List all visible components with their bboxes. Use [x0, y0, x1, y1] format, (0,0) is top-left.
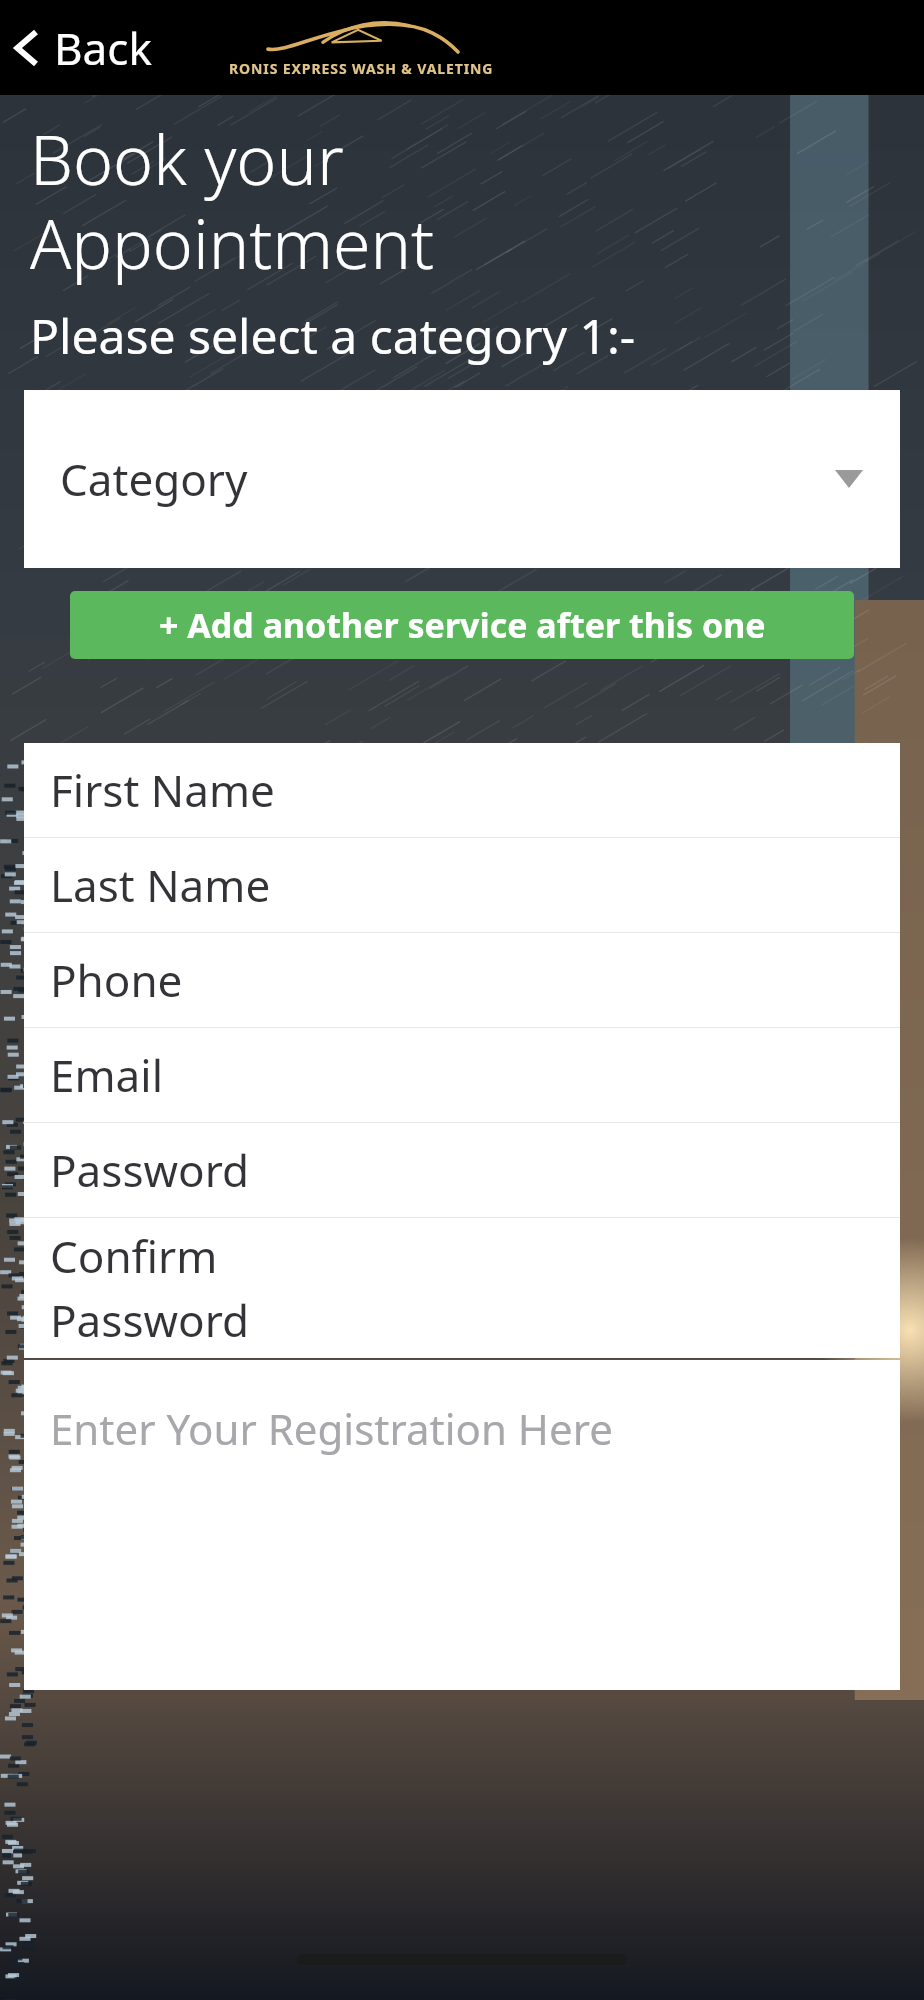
staticText: Phone — [50, 950, 183, 1010]
staticText: RONIS EXPRESS WASH & VALETING — [229, 59, 494, 78]
staticText: Password — [50, 1140, 250, 1200]
staticText: Password — [50, 1290, 250, 1350]
button[interactable]: Enter Your Registration Here — [24, 1360, 900, 1690]
button[interactable]: Confirm — [24, 1217, 900, 1358]
button[interactable]: + Add another service after this one — [70, 591, 854, 659]
staticText: Enter Your Registration Here — [50, 1400, 613, 1457]
button[interactable]: Email — [24, 1027, 900, 1122]
button[interactable]: Password — [24, 1122, 900, 1217]
staticText: First Name — [50, 760, 275, 820]
staticText: Last Name — [50, 855, 271, 915]
staticText: Please select a category 1:- — [30, 303, 636, 368]
staticText: Category — [60, 449, 248, 509]
button[interactable]: Back — [8, 12, 156, 84]
button[interactable]: Last Name — [24, 837, 900, 932]
staticText: Back — [54, 18, 152, 78]
button[interactable]: Phone — [24, 932, 900, 1027]
button[interactable]: First Name — [24, 743, 900, 837]
staticText: + Add another service after this one — [159, 602, 766, 648]
staticText: Email — [50, 1045, 163, 1105]
staticText: Book your Appointment — [30, 112, 924, 289]
button[interactable]: Category — [24, 390, 900, 568]
staticText: Confirm — [50, 1226, 218, 1286]
